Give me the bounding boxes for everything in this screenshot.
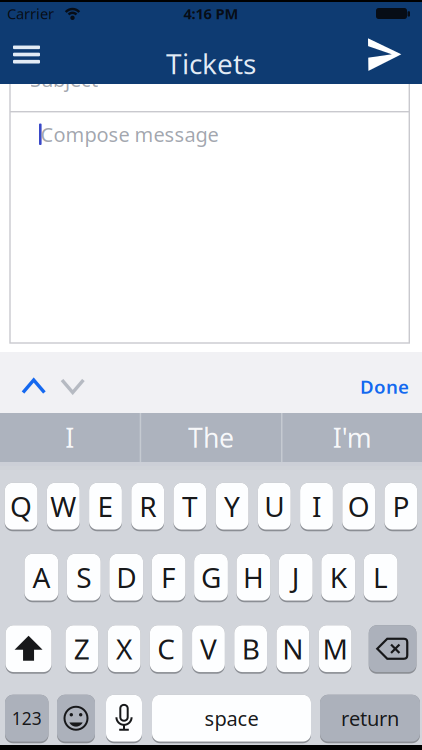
staticText: C: [157, 630, 175, 667]
staticText: W: [50, 488, 76, 525]
staticText: return: [341, 705, 399, 731]
button[interactable]: B: [234, 625, 267, 674]
button[interactable]: K: [321, 554, 355, 602]
staticText: G: [201, 559, 221, 596]
button[interactable]: R: [131, 483, 164, 531]
staticText: B: [242, 630, 260, 667]
staticText: J: [292, 559, 300, 596]
button[interactable]: O: [342, 483, 375, 531]
staticText: space: [204, 705, 258, 731]
button[interactable]: Q: [5, 483, 37, 531]
button[interactable]: F: [152, 554, 185, 602]
button[interactable]: E: [89, 483, 122, 531]
button[interactable]: Emoji: [57, 695, 95, 743]
staticText: R: [139, 488, 156, 525]
button[interactable]: V: [192, 625, 225, 674]
button[interactable]: M: [319, 625, 351, 674]
staticText: U: [264, 488, 284, 525]
staticText: E: [97, 488, 113, 525]
button[interactable]: Z: [65, 625, 98, 674]
button[interactable]: J: [279, 554, 313, 602]
button[interactable]: S: [67, 554, 101, 602]
staticText: M: [322, 630, 347, 667]
staticText: N: [282, 630, 303, 667]
button[interactable]: N: [276, 625, 309, 674]
button[interactable]: H: [236, 554, 270, 602]
button[interactable]: I: [300, 483, 333, 531]
staticText: K: [330, 559, 347, 596]
staticText: F: [161, 559, 176, 596]
staticText: 123: [12, 707, 42, 730]
button[interactable]: 123: [5, 695, 48, 743]
button[interactable]: return: [320, 695, 420, 743]
staticText: The: [188, 420, 234, 455]
button[interactable]: G: [194, 554, 228, 602]
staticText: Carrier: [7, 4, 54, 23]
staticText: Z: [74, 630, 90, 667]
button[interactable]: C: [150, 625, 183, 674]
button[interactable]: Done: [360, 374, 409, 399]
button[interactable]: X: [108, 625, 140, 674]
button[interactable]: Next field: [60, 377, 86, 396]
staticText: L: [373, 559, 388, 596]
button[interactable]: The: [141, 413, 281, 462]
staticText: 4:16 PM: [183, 4, 238, 23]
staticText: X: [116, 630, 132, 667]
staticText: V: [200, 630, 217, 667]
button[interactable]: D: [109, 554, 143, 602]
staticText: A: [32, 559, 50, 596]
staticText: Tickets: [166, 45, 256, 82]
staticText: O: [348, 488, 370, 525]
button[interactable]: Y: [216, 483, 248, 531]
button[interactable]: L: [364, 554, 397, 602]
staticText: T: [182, 488, 198, 525]
button[interactable]: Delete: [369, 625, 416, 674]
button[interactable]: I'm: [282, 413, 422, 462]
button[interactable]: T: [173, 483, 206, 531]
staticText: I'm: [333, 420, 372, 455]
staticText: P: [392, 488, 409, 525]
staticText: D: [116, 559, 136, 596]
button[interactable]: Menu: [4, 32, 49, 77]
button[interactable]: Send: [367, 37, 403, 71]
staticText: Subject: [30, 66, 98, 93]
button[interactable]: I: [0, 413, 140, 462]
button[interactable]: P: [384, 483, 417, 531]
button[interactable]: U: [258, 483, 291, 531]
button[interactable]: space: [152, 695, 311, 743]
button[interactable]: A: [24, 554, 58, 602]
staticText: Q: [10, 488, 32, 525]
staticText: Compose message: [40, 121, 218, 148]
button[interactable]: Shift: [6, 625, 52, 674]
button[interactable]: Dictate: [106, 695, 142, 743]
button[interactable]: W: [47, 483, 80, 531]
staticText: Y: [224, 488, 240, 525]
staticText: Done: [360, 374, 409, 399]
staticText: H: [243, 559, 264, 596]
button[interactable]: Previous field: [21, 377, 47, 396]
staticText: S: [76, 559, 91, 596]
staticText: I: [65, 420, 74, 455]
staticText: I: [312, 488, 321, 525]
